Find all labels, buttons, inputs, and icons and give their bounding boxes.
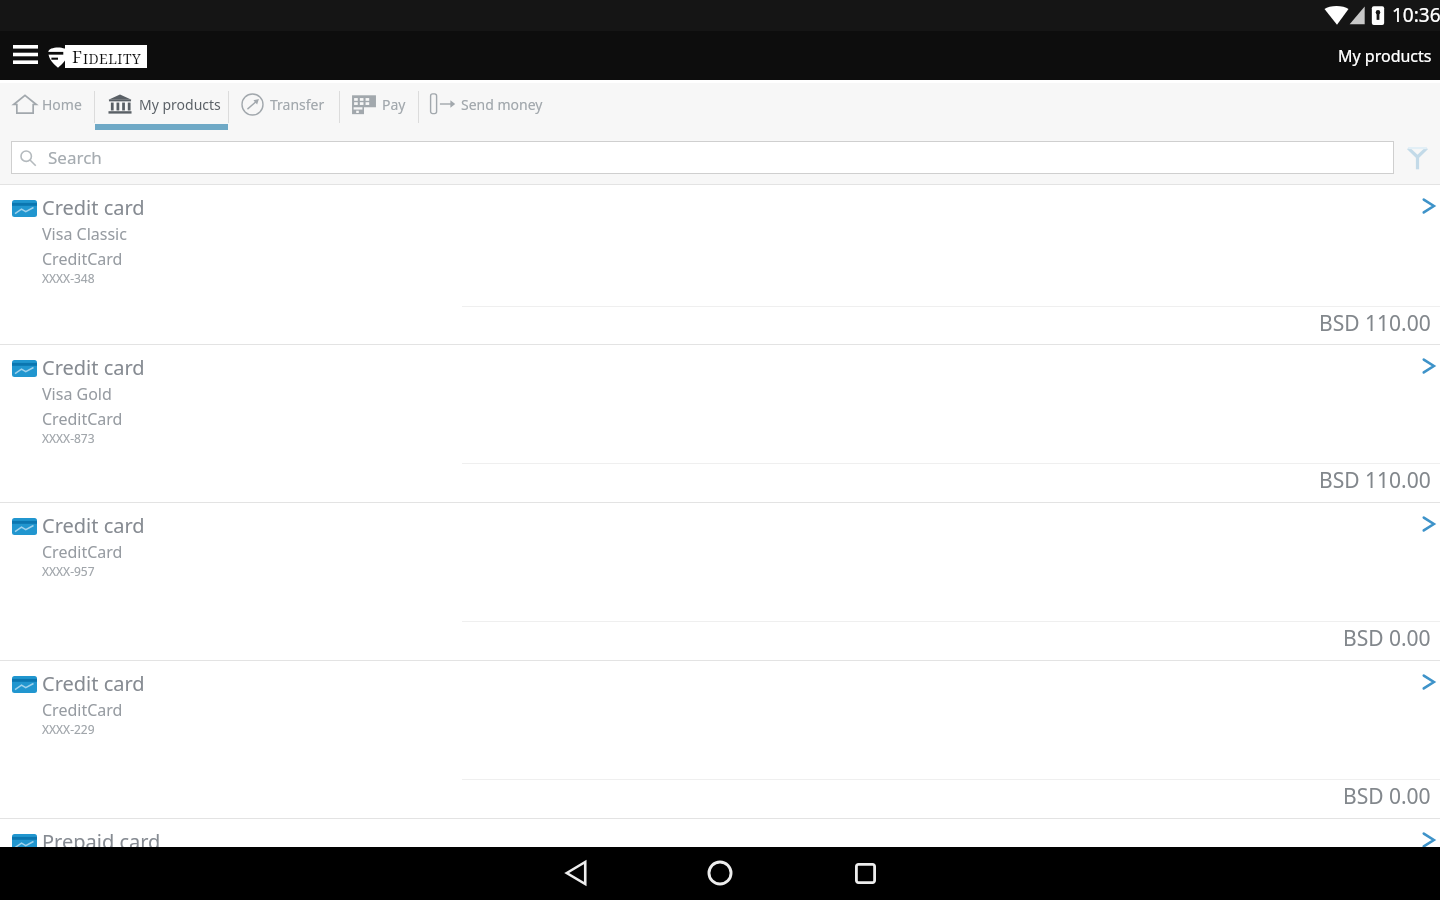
staticText: F bbox=[72, 45, 83, 68]
button[interactable]: Filter bbox=[1403, 143, 1432, 171]
button[interactable]: Home bbox=[696, 853, 744, 893]
staticText: Home bbox=[42, 95, 82, 114]
staticText: CreditCard bbox=[42, 248, 123, 270]
button[interactable]: Open Credit card bbox=[1412, 192, 1440, 220]
button[interactable]: Credit card bbox=[0, 345, 1440, 502]
staticText: CreditCard bbox=[42, 541, 123, 563]
button[interactable]: Open Credit card bbox=[1412, 510, 1440, 538]
staticText: Search bbox=[48, 146, 102, 169]
staticText: My products bbox=[1338, 45, 1432, 67]
button[interactable]: Credit card bbox=[0, 661, 1440, 818]
staticText: BSD 110.00 bbox=[1319, 309, 1431, 338]
staticText: Pay bbox=[382, 95, 406, 114]
staticText: CreditCard bbox=[42, 408, 123, 430]
staticText: CreditCard bbox=[42, 699, 123, 721]
button[interactable]: Home bbox=[0, 83, 94, 130]
button[interactable]: Prepaid card bbox=[0, 819, 1440, 900]
staticText: XXXX-873 bbox=[42, 430, 95, 446]
staticText: Credit card bbox=[42, 512, 145, 539]
staticText: Prepaid card bbox=[42, 828, 161, 855]
button[interactable]: Search bbox=[11, 141, 1394, 174]
button[interactable]: Open Credit card bbox=[1412, 668, 1440, 696]
staticText: Transfer bbox=[270, 95, 325, 114]
button[interactable]: Credit card bbox=[0, 185, 1440, 344]
staticText: XXXX-229 bbox=[42, 721, 95, 737]
staticText: BSD 0.00 bbox=[1343, 624, 1431, 653]
button[interactable]: My products bbox=[95, 83, 228, 130]
staticText: Visa Classic bbox=[42, 223, 127, 245]
staticText: 10:36 bbox=[1392, 2, 1440, 28]
staticText: Credit card bbox=[42, 194, 145, 221]
staticText: BSD 0.00 bbox=[1343, 782, 1431, 811]
staticText: Credit card bbox=[42, 354, 145, 381]
staticText: XXXX-957 bbox=[42, 563, 95, 579]
button[interactable]: Open navigation menu bbox=[9, 38, 41, 70]
button[interactable]: Open Credit card bbox=[1412, 352, 1440, 380]
staticText: My products bbox=[139, 95, 221, 114]
button[interactable]: Open Prepaid card bbox=[1412, 826, 1440, 854]
staticText: Visa Gold bbox=[42, 383, 112, 405]
button[interactable]: Back bbox=[552, 853, 600, 893]
staticText: Credit card bbox=[42, 670, 145, 697]
button[interactable]: Credit card bbox=[0, 503, 1440, 660]
staticText: IDELITY bbox=[83, 49, 142, 68]
staticText: BSD 110.00 bbox=[1319, 466, 1431, 495]
button[interactable]: Transfer bbox=[229, 83, 339, 130]
staticText: XXXX-348 bbox=[42, 270, 95, 286]
button[interactable]: Pay bbox=[340, 83, 418, 130]
staticText: Send money bbox=[461, 95, 543, 114]
button[interactable]: Recent apps bbox=[841, 853, 889, 893]
button[interactable]: Send money bbox=[419, 83, 561, 130]
